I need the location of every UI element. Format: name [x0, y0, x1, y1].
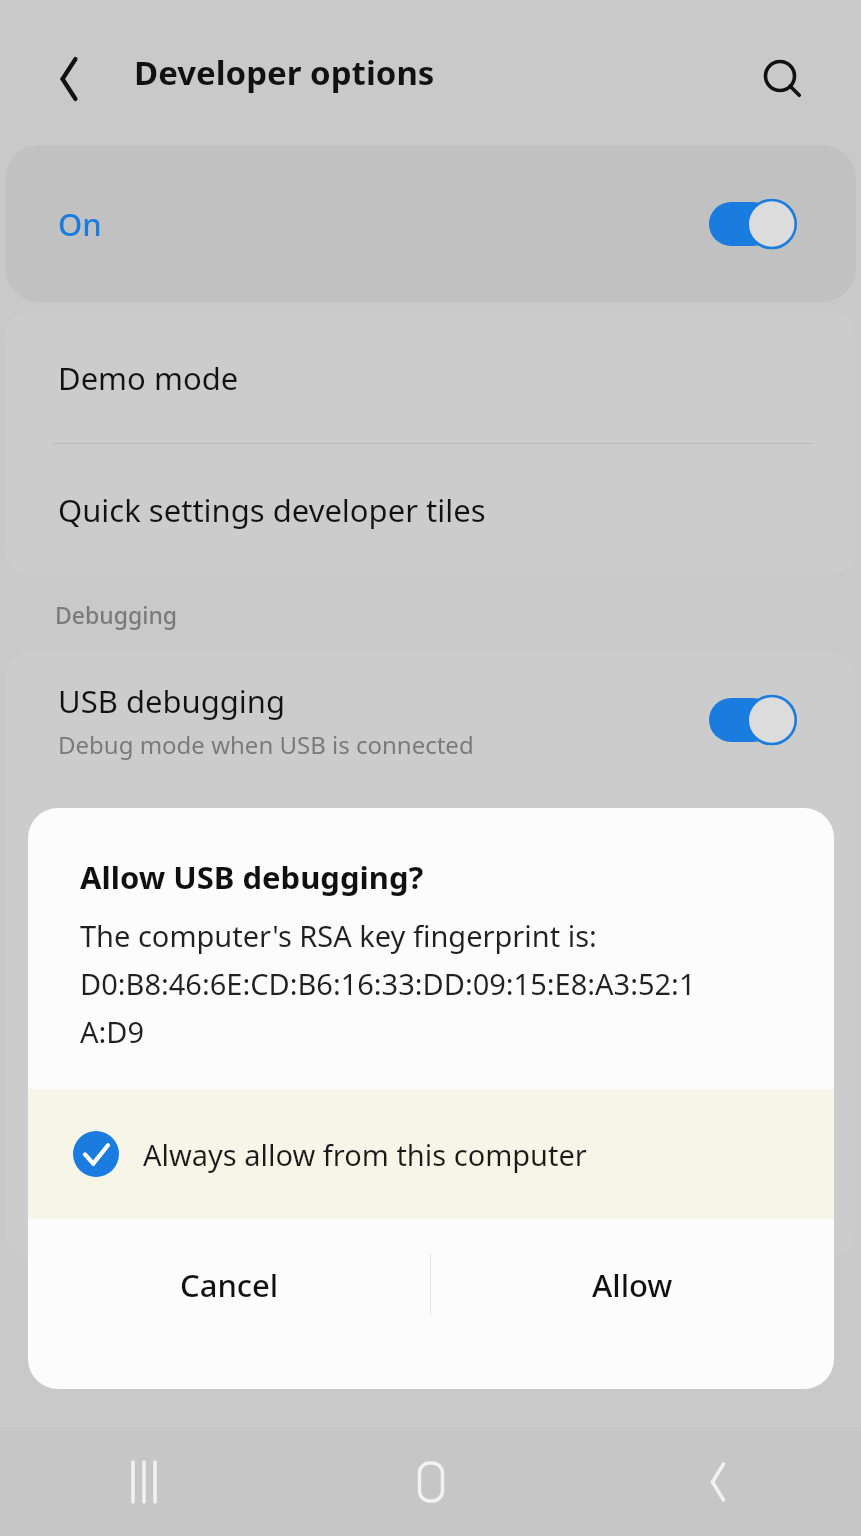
button[interactable]: Search [750, 46, 814, 110]
button[interactable]: USB debugging [5, 652, 856, 788]
staticText: Debug mode when USB is connected [58, 728, 474, 761]
staticText: Always allow from this computer [143, 1135, 587, 1174]
button[interactable]: Recents [0, 1427, 287, 1536]
button[interactable]: Allow [431, 1219, 834, 1351]
staticText: Demo mode [58, 357, 239, 399]
button[interactable]: Back [38, 48, 100, 110]
button[interactable]: Toggle [709, 695, 797, 745]
staticText: Debugging [55, 599, 178, 630]
staticText: timeout [58, 1202, 173, 1244]
staticText: Allow [592, 1264, 673, 1306]
button[interactable]: On [5, 145, 856, 302]
staticText: USB debugging [58, 680, 286, 722]
staticText: On [58, 203, 102, 245]
button[interactable]: Demo mode [5, 312, 856, 443]
button[interactable]: Cancel [28, 1219, 430, 1351]
staticText: Developer options [134, 50, 435, 95]
button[interactable]: Home [287, 1427, 574, 1536]
staticText: Quick settings developer tiles [58, 489, 486, 531]
button[interactable]: Toggle [709, 199, 797, 249]
button[interactable]: Quick settings developer tiles [5, 444, 856, 575]
staticText: The computer's RSA key fingerprint is: D… [80, 916, 696, 1051]
button[interactable]: Always allow from this computer [28, 1089, 834, 1219]
staticText: Cancel [180, 1264, 279, 1306]
staticText: Allow USB debugging? [80, 856, 424, 898]
